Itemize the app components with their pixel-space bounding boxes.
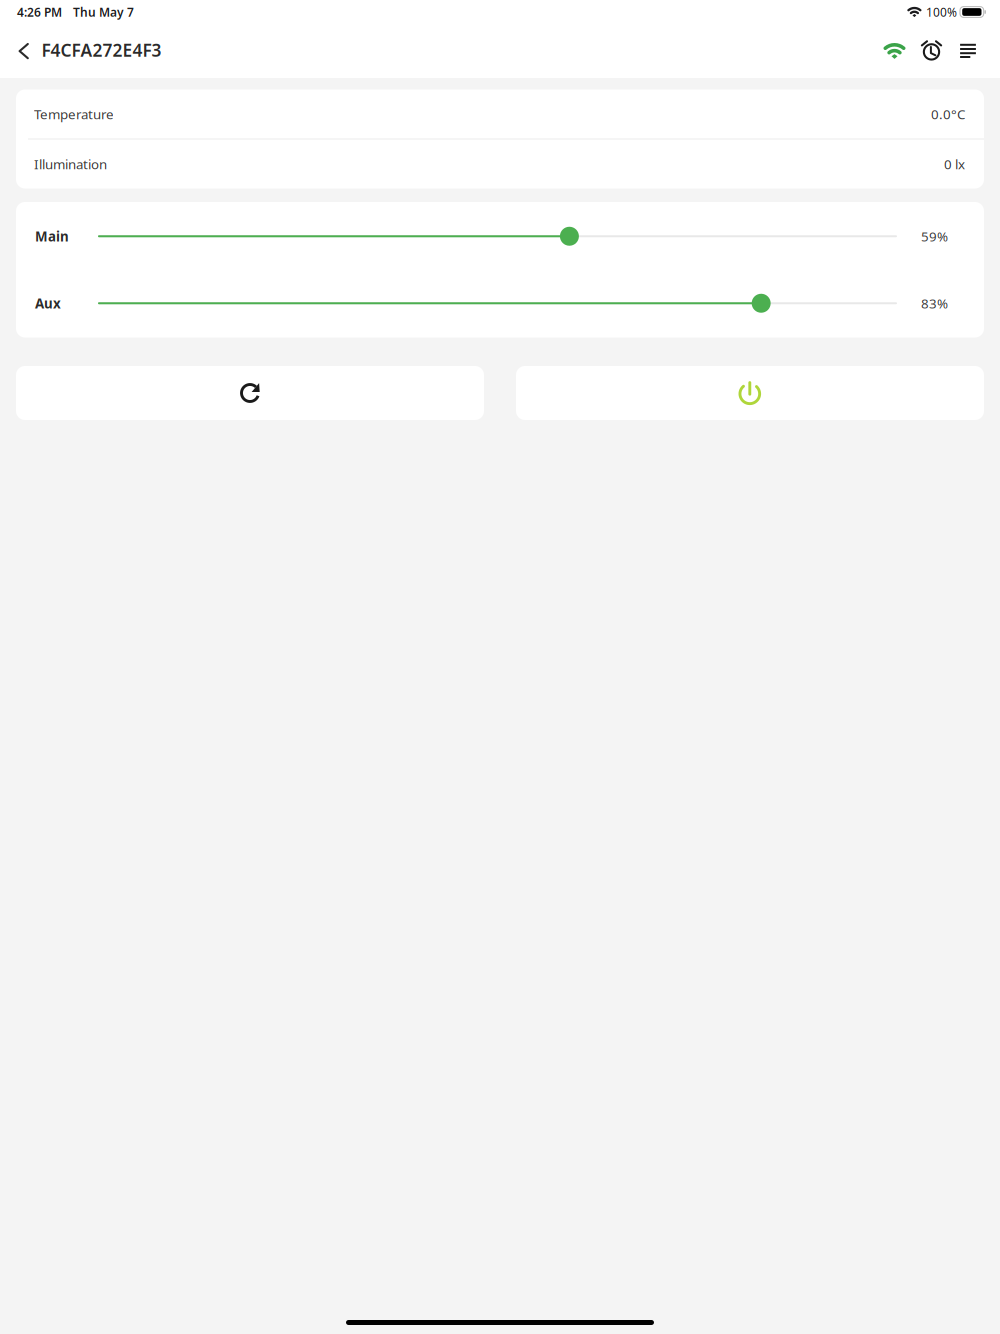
button[interactable]: Power <box>516 366 984 420</box>
staticText: F4CFA272E4F3 <box>41 38 161 61</box>
button[interactable]: Refresh <box>16 366 484 420</box>
staticText: Illumination <box>34 155 107 173</box>
button[interactable]: Wi-Fi status <box>876 24 913 78</box>
staticText: 100% <box>926 4 957 20</box>
staticText: 83% <box>921 294 948 312</box>
staticText: 0 lx <box>944 155 965 173</box>
button[interactable]: F4CFA272E4F3 <box>0 24 173 78</box>
staticText: 59% <box>921 227 948 245</box>
staticText: 0.0°C <box>931 105 965 123</box>
staticText: 4:26 PM <box>17 4 62 20</box>
button[interactable]: Schedule <box>913 24 950 78</box>
staticText: Thu May 7 <box>73 4 134 20</box>
staticText: Temperature <box>34 105 114 123</box>
button[interactable]: Menu <box>950 24 986 78</box>
staticText: Main <box>35 227 69 245</box>
staticText: Aux <box>35 294 61 312</box>
